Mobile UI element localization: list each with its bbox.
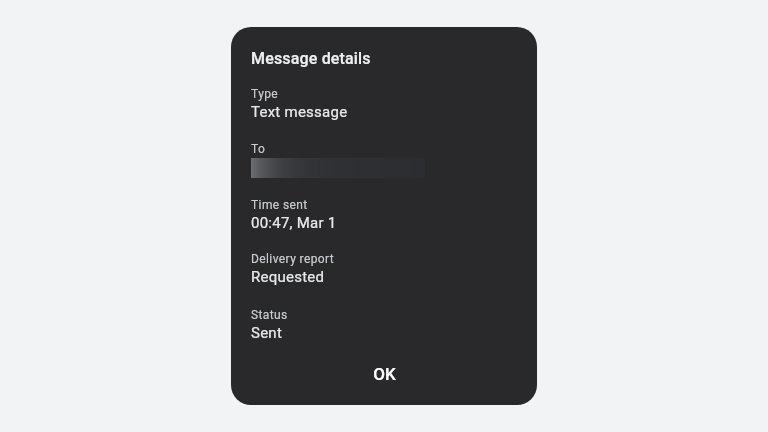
staticText: Sent <box>251 324 283 342</box>
staticText: 00:47, Mar 1 <box>251 214 337 232</box>
staticText: Status <box>251 308 288 322</box>
staticText: Delivery report <box>251 252 335 266</box>
staticText: Message details <box>251 49 371 68</box>
staticText: To <box>251 142 266 156</box>
staticText: Time sent <box>251 198 308 212</box>
staticText: Requested <box>251 268 325 286</box>
staticText: OK <box>373 364 396 384</box>
other: Recipient hidden <box>251 158 425 178</box>
button[interactable]: OK <box>231 349 537 399</box>
staticText: Type <box>251 87 279 101</box>
staticText: Text message <box>251 103 348 121</box>
